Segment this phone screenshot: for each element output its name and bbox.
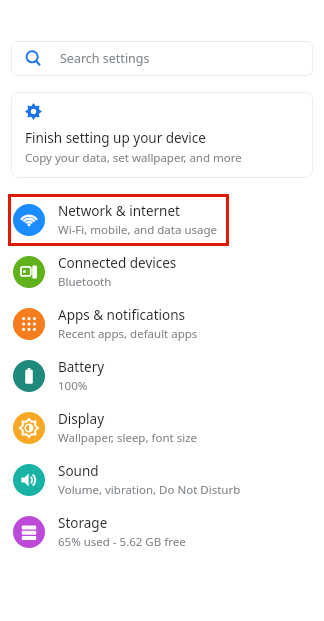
staticText: Recent apps, default apps — [58, 326, 198, 342]
staticText: Sound — [58, 462, 99, 480]
button[interactable]: Display — [0, 402, 324, 454]
staticText: Network & internet — [58, 202, 180, 220]
button[interactable]: Connected devices — [0, 246, 324, 298]
staticText: 100% — [58, 378, 88, 394]
button[interactable]: Apps & notifications — [0, 298, 324, 350]
button[interactable]: Network & internet — [8, 194, 229, 246]
button[interactable]: Finish setting up your device — [11, 92, 313, 178]
staticText: Copy your data, set wallpaper, and more — [25, 150, 242, 166]
staticText: Search settings — [60, 50, 150, 67]
button[interactable]: Battery — [0, 350, 324, 402]
staticText: 65% used - 5.62 GB free — [58, 534, 186, 550]
staticText: Wi-Fi, mobile, and data usage — [58, 222, 218, 238]
staticText: Finish setting up your device — [25, 129, 206, 147]
button[interactable]: Search settings — [11, 41, 313, 76]
staticText: Bluetooth — [58, 274, 112, 290]
button[interactable]: Storage — [0, 506, 324, 558]
staticText: Connected devices — [58, 254, 177, 272]
staticText: Storage — [58, 514, 108, 532]
staticText: Volume, vibration, Do Not Disturb — [58, 482, 241, 498]
button[interactable]: Sound — [0, 454, 324, 506]
staticText: Battery — [58, 358, 105, 376]
staticText: Display — [58, 410, 105, 428]
staticText: Apps & notifications — [58, 306, 185, 324]
staticText: Wallpaper, sleep, font size — [58, 430, 198, 446]
